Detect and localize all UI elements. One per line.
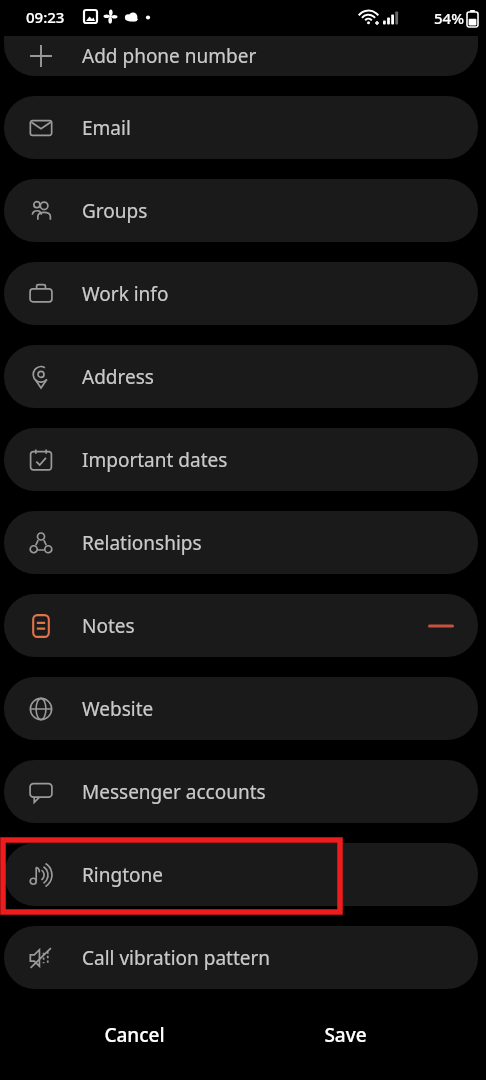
button[interactable]: Relationships <box>4 511 478 574</box>
button[interactable]: Cancel <box>86 1012 183 1058</box>
button[interactable]: Work info <box>4 262 478 325</box>
staticText: Website <box>82 696 154 722</box>
staticText: Messenger accounts <box>82 779 266 805</box>
button[interactable]: Important dates <box>4 428 478 491</box>
button[interactable]: Add phone number <box>4 36 478 76</box>
staticText: 09:23 <box>26 7 65 27</box>
staticText: Cancel <box>104 1022 165 1048</box>
staticText: Work info <box>82 281 169 307</box>
button[interactable]: Email <box>4 96 478 159</box>
staticText: Ringtone <box>82 862 163 888</box>
staticText: Add phone number <box>82 43 257 69</box>
staticText: Email <box>82 115 131 141</box>
staticText: Save <box>324 1022 367 1048</box>
staticText: 54% <box>434 8 464 28</box>
button[interactable]: Website <box>4 677 478 740</box>
button[interactable]: Remove Notes <box>426 611 456 641</box>
staticText: Groups <box>82 198 148 224</box>
button[interactable]: Address <box>4 345 478 408</box>
button[interactable]: Save <box>306 1012 385 1058</box>
staticText: Important dates <box>82 447 228 473</box>
button[interactable]: Call vibration pattern <box>4 926 478 989</box>
button[interactable]: Notes <box>4 594 478 657</box>
staticText: Relationships <box>82 530 202 556</box>
staticText: Address <box>82 364 154 390</box>
staticText: Notes <box>82 613 135 639</box>
button[interactable]: Groups <box>4 179 478 242</box>
button[interactable]: Messenger accounts <box>4 760 478 823</box>
button[interactable]: Ringtone <box>4 843 478 906</box>
staticText: Call vibration pattern <box>82 945 271 971</box>
